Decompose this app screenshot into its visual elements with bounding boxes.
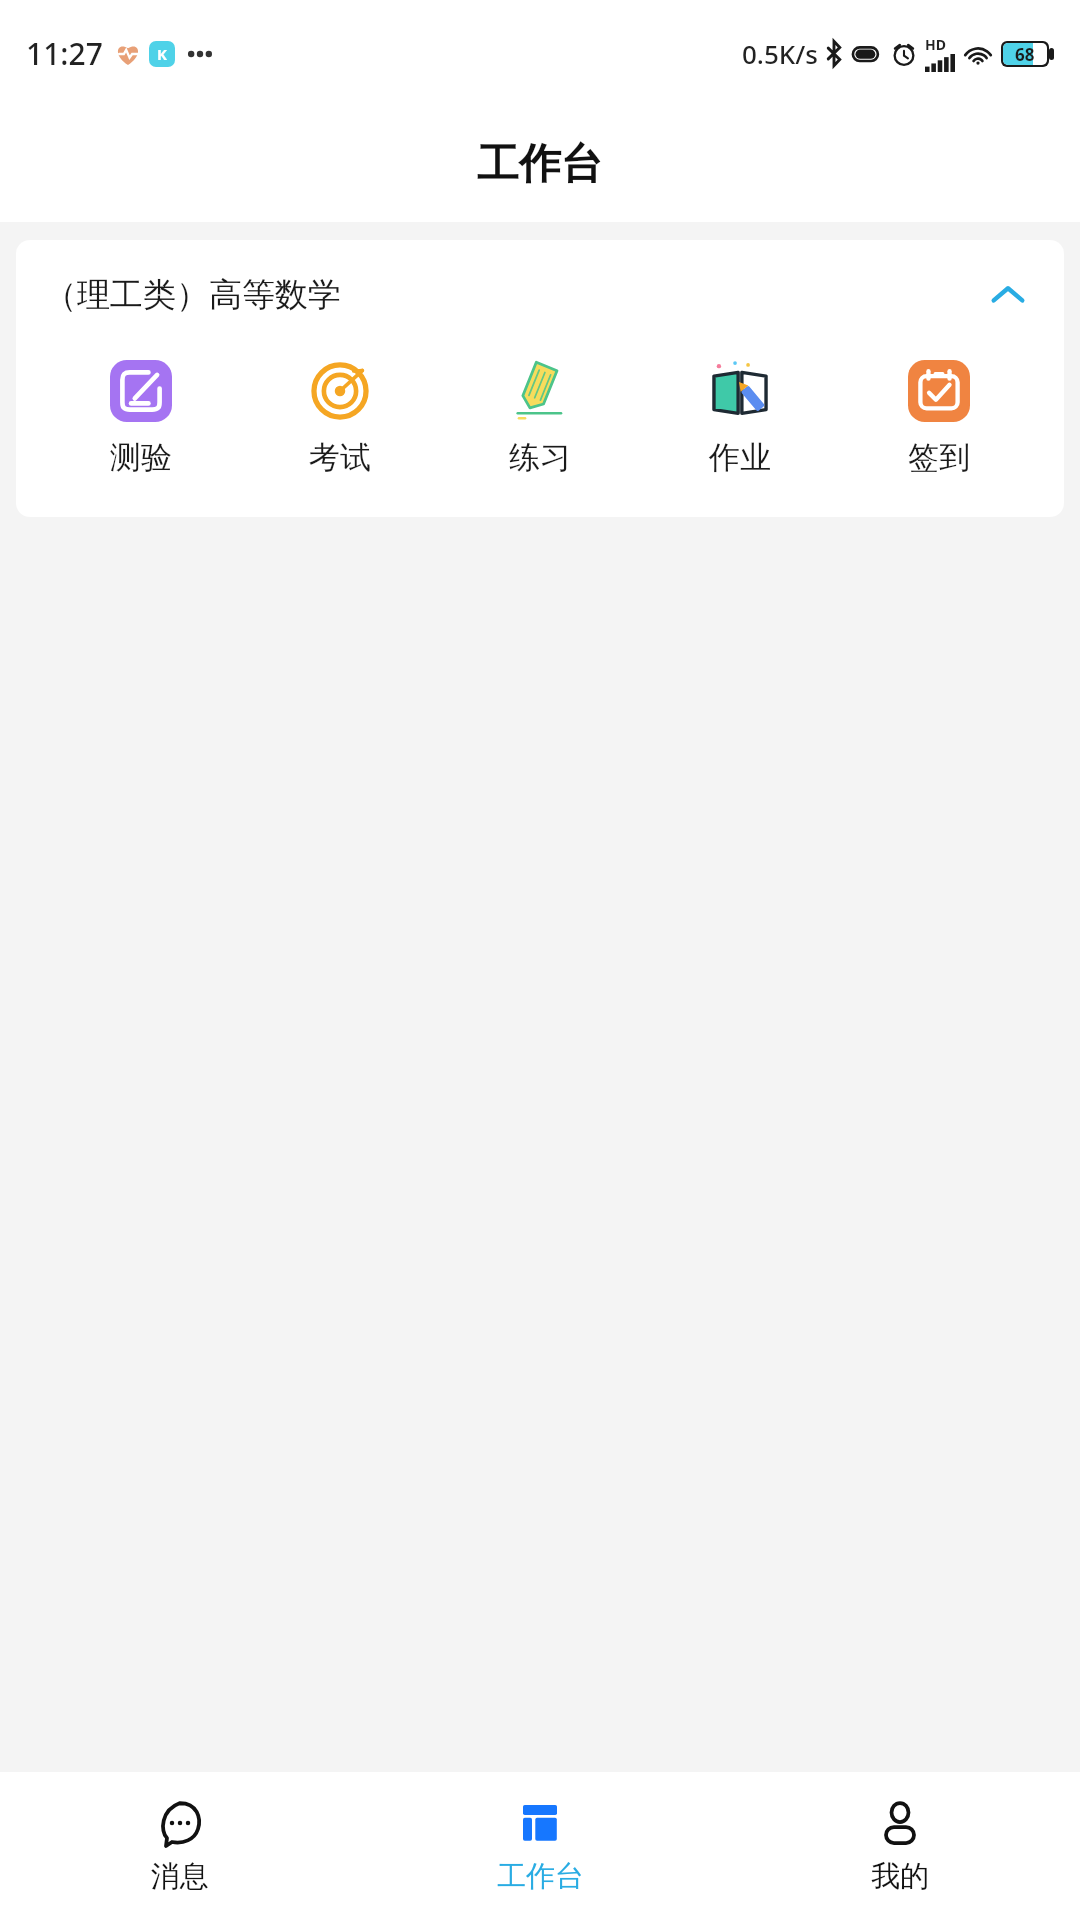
staticText: K <box>157 44 167 64</box>
button[interactable]: 消息 <box>0 1772 360 1920</box>
staticText: 作业 <box>709 438 771 477</box>
staticText: 消息 <box>151 1858 209 1895</box>
staticText: 测验 <box>110 438 172 477</box>
button[interactable]: 考试 <box>265 354 415 483</box>
button[interactable]: 签到 <box>864 354 1014 483</box>
staticText: 签到 <box>908 438 970 477</box>
button[interactable]: 工作台 <box>360 1772 720 1920</box>
staticText: HD <box>925 35 946 54</box>
staticText: 0.5K/s <box>742 36 818 71</box>
staticText: 练习 <box>509 438 571 477</box>
staticText: （理工类）高等数学 <box>44 274 341 316</box>
staticText: 11:27 <box>26 33 103 74</box>
staticText: 工作台 <box>477 138 603 191</box>
button[interactable]: 练习 <box>465 354 615 483</box>
button[interactable]: 作业 <box>665 354 815 483</box>
button[interactable]: （理工类）高等数学 <box>16 240 1064 350</box>
button[interactable]: 测验 <box>66 354 216 483</box>
button[interactable]: 我的 <box>720 1772 1080 1920</box>
staticText: 工作台 <box>497 1858 584 1895</box>
staticText: 68 <box>1015 43 1035 65</box>
staticText: 我的 <box>871 1858 929 1895</box>
button[interactable]: Collapse <box>980 267 1036 323</box>
staticText: 考试 <box>309 438 371 477</box>
